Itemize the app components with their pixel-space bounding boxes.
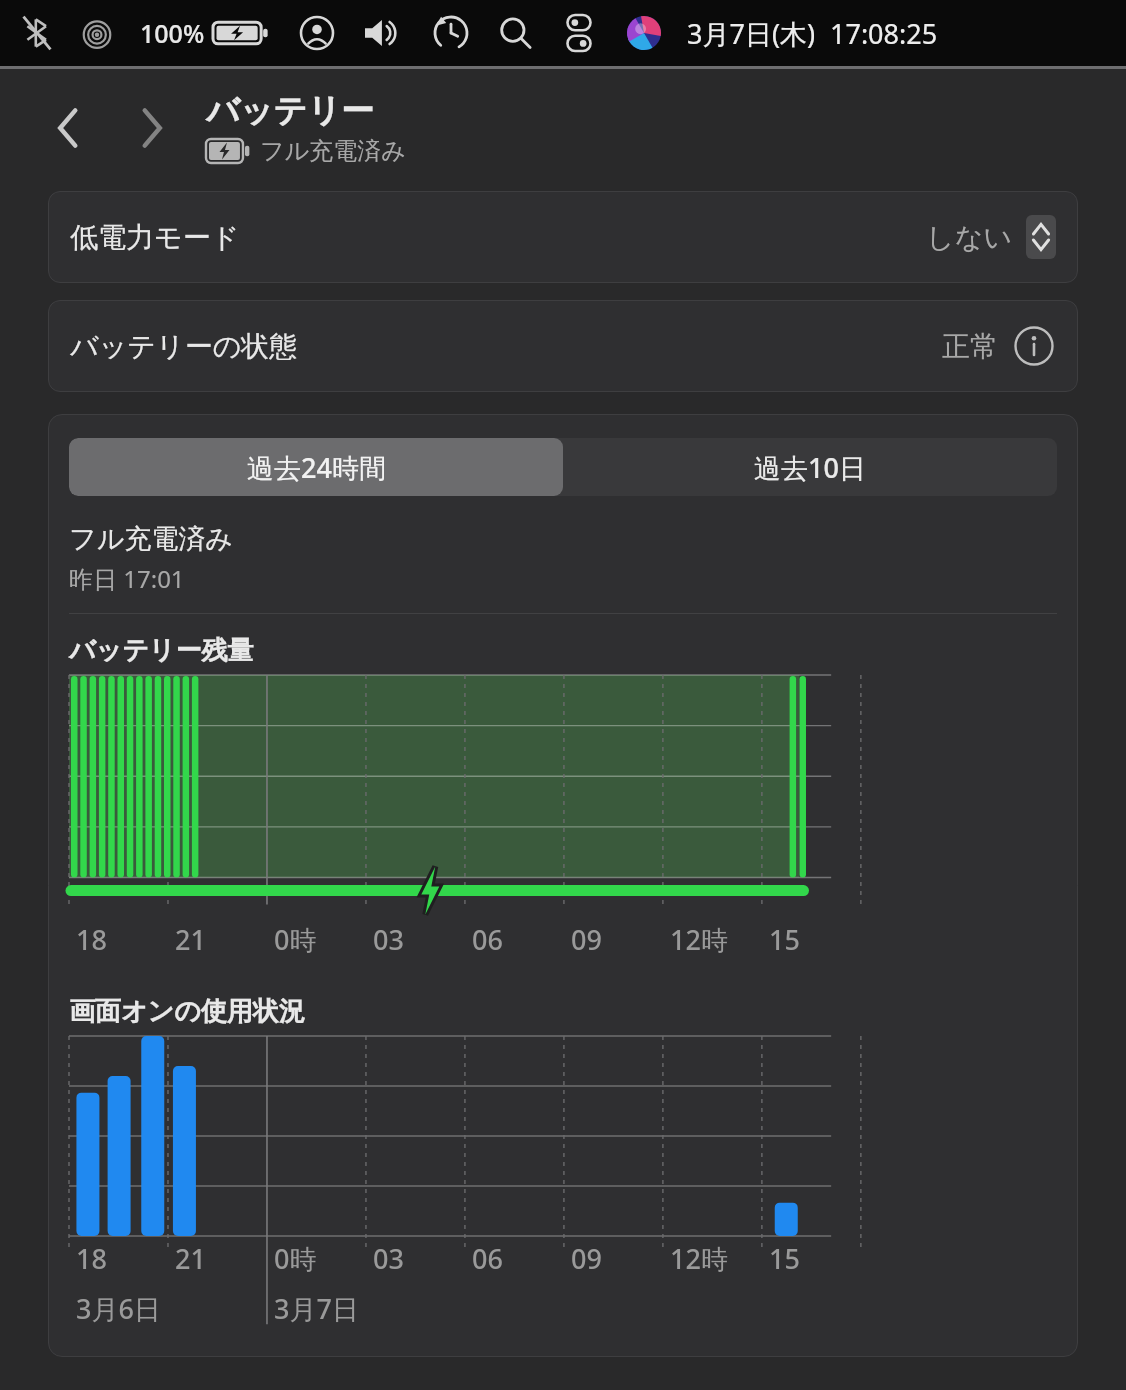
staticText: 21 [175, 921, 206, 958]
staticText: バッテリーの状態 [70, 329, 298, 364]
staticText: バッテリー [206, 90, 375, 132]
staticText: 03 [373, 1240, 404, 1277]
staticText: 正常 [942, 329, 998, 364]
button[interactable]: Volume [363, 16, 405, 50]
staticText: 100% [140, 16, 205, 50]
staticText: バッテリー残量 [69, 634, 254, 667]
staticText: 画面オンの使用状況 [69, 995, 305, 1028]
button[interactable]: User account [299, 15, 335, 51]
staticText: フル充電済み [69, 522, 233, 556]
staticText: フル充電済み [260, 136, 406, 166]
staticText: 21 [175, 1240, 206, 1277]
button[interactable]: Siri [625, 14, 663, 52]
button[interactable]: Spotlight search [497, 15, 533, 51]
button[interactable]: Back [40, 97, 96, 159]
staticText: 3月7日(木) [687, 15, 816, 52]
staticText: 15 [769, 1240, 800, 1277]
staticText: 過去10日 [754, 449, 866, 486]
staticText: 17:08:25 [830, 15, 938, 52]
staticText: 09 [571, 921, 602, 958]
button[interactable]: AirDrop [80, 16, 114, 50]
staticText: 06 [472, 1240, 503, 1277]
staticText: 12時 [670, 1240, 728, 1277]
staticText: 09 [571, 1240, 602, 1277]
staticText: 0時 [274, 921, 317, 958]
button[interactable]: 過去10日 [563, 438, 1057, 496]
button[interactable]: Change low power mode [1026, 215, 1056, 259]
staticText: 3月6日 [76, 1290, 161, 1327]
staticText: 昨日 17:01 [69, 562, 185, 595]
button[interactable]: 低電力モード [48, 191, 1078, 283]
staticText: 06 [472, 921, 503, 958]
staticText: 12時 [670, 921, 728, 958]
staticText: 18 [76, 921, 107, 958]
button[interactable]: Battery charging [213, 18, 269, 48]
button[interactable]: バッテリーの状態 [48, 300, 1078, 392]
button[interactable]: Battery health info [1012, 324, 1056, 368]
staticText: 03 [373, 921, 404, 958]
button[interactable]: 過去24時間 [69, 438, 563, 496]
staticText: 15 [769, 921, 800, 958]
staticText: 過去24時間 [247, 449, 386, 486]
staticText: しない [926, 220, 1012, 255]
staticText: 3月7日 [274, 1290, 359, 1327]
staticText: 低電力モード [70, 220, 240, 255]
button[interactable]: Forward [124, 97, 180, 159]
button[interactable]: Control Center [561, 14, 597, 52]
staticText: 18 [76, 1240, 107, 1277]
button[interactable]: Time Machine [433, 15, 469, 51]
staticText: 0時 [274, 1240, 317, 1277]
button[interactable]: Bluetooth off [22, 16, 52, 50]
